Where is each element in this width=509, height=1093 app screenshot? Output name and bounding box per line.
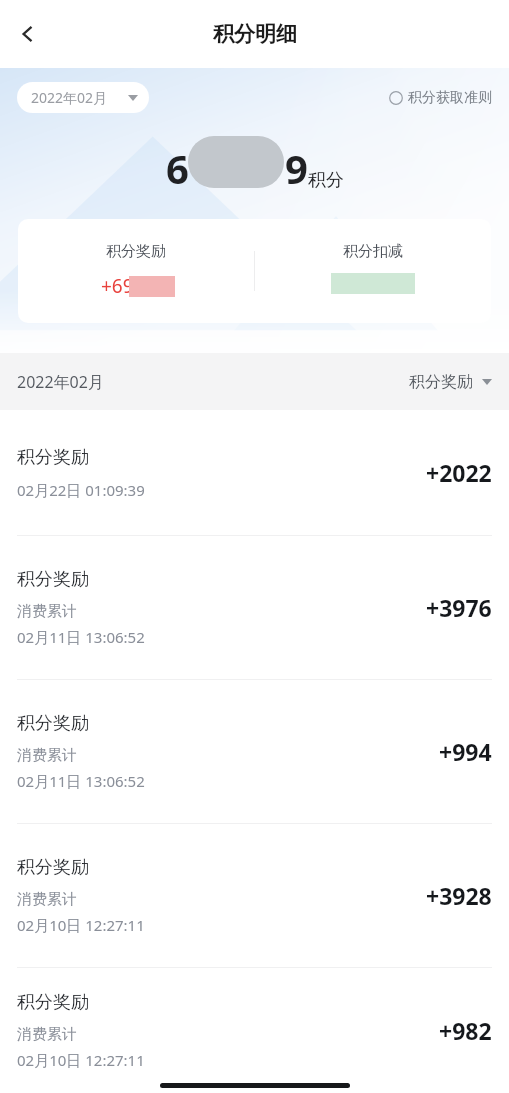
- staticText: 积分: [308, 169, 344, 192]
- staticText: 积分扣减: [343, 242, 403, 261]
- button[interactable]: 积分奖励: [0, 410, 509, 535]
- staticText: +2022: [426, 457, 492, 488]
- staticText: +982: [439, 1015, 492, 1046]
- button[interactable]: 2022年02月: [17, 82, 149, 113]
- staticText: 积分奖励: [409, 372, 473, 392]
- button[interactable]: 积分奖励: [0, 680, 509, 823]
- staticText: +69: [101, 273, 134, 299]
- staticText: +994: [439, 736, 492, 767]
- staticText: 积分明细: [213, 21, 297, 47]
- staticText: 9: [160, 273, 171, 299]
- button[interactable]: 积分奖励: [409, 366, 492, 398]
- staticText: 2022年02月: [31, 88, 108, 107]
- staticText: 消费累计: [17, 602, 77, 621]
- staticText: 积分奖励: [106, 242, 166, 261]
- staticText: 02月11日 13:06:52: [17, 771, 145, 791]
- staticText: +3928: [426, 880, 492, 911]
- staticText: 消费累计: [17, 890, 77, 909]
- staticText: 02月10日 12:27:11: [17, 915, 145, 935]
- staticText: 积分奖励: [17, 712, 89, 735]
- staticText: 02月10日 12:27:11: [17, 1050, 145, 1070]
- staticText: 消费累计: [17, 1025, 77, 1044]
- button[interactable]: Back: [0, 6, 56, 62]
- staticText: 9: [285, 141, 308, 195]
- staticText: 消费累计: [17, 746, 77, 765]
- button[interactable]: 积分奖励: [0, 536, 509, 679]
- staticText: 积分奖励: [17, 856, 89, 879]
- staticText: 02月11日 13:06:52: [17, 627, 145, 647]
- button[interactable]: 积分奖励: [18, 219, 254, 323]
- staticText: 积分奖励: [17, 446, 89, 469]
- staticText: 积分奖励: [17, 991, 89, 1014]
- button[interactable]: 积分奖励: [0, 824, 509, 967]
- staticText: 2022年02月: [17, 371, 104, 393]
- staticText: 02月22日 01:09:39: [17, 480, 145, 500]
- staticText: 积分奖励: [17, 568, 89, 591]
- staticText: 6: [166, 141, 189, 195]
- button[interactable]: 积分奖励: [0, 968, 509, 1093]
- staticText: +3976: [426, 592, 492, 623]
- staticText: 积分获取准则: [408, 89, 492, 107]
- button[interactable]: 积分扣减: [254, 219, 491, 323]
- button[interactable]: 积分获取准则: [389, 83, 492, 113]
